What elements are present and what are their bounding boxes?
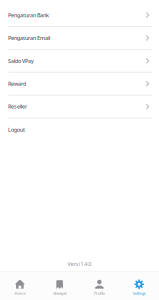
- button[interactable]: Riwayat: [40, 272, 80, 300]
- staticText: Reseller: [8, 103, 27, 110]
- button[interactable]: Logout: [0, 118, 159, 141]
- button[interactable]: Reward: [0, 73, 159, 96]
- staticText: Riwayat: [53, 290, 66, 296]
- staticText: Profile: [94, 290, 105, 296]
- staticText: Pengaturan Email: [8, 34, 50, 41]
- staticText: Reward: [8, 80, 26, 87]
- button[interactable]: Reseller: [0, 95, 159, 118]
- staticText: Home: [14, 290, 25, 296]
- staticText: Saldo VPay: [8, 57, 34, 64]
- button[interactable]: Pengaturan Bank: [0, 4, 159, 27]
- button[interactable]: Profile: [79, 272, 119, 300]
- button[interactable]: Pengaturan Email: [0, 27, 159, 50]
- staticText: Versi 1.4.0: [67, 260, 91, 268]
- staticText: Pengaturan Bank: [8, 12, 49, 19]
- staticText: Settings: [133, 290, 146, 296]
- button[interactable]: Saldo VPay: [0, 50, 159, 73]
- button[interactable]: Settings: [119, 272, 159, 300]
- button[interactable]: Home: [0, 272, 40, 300]
- staticText: Logout: [8, 126, 25, 133]
